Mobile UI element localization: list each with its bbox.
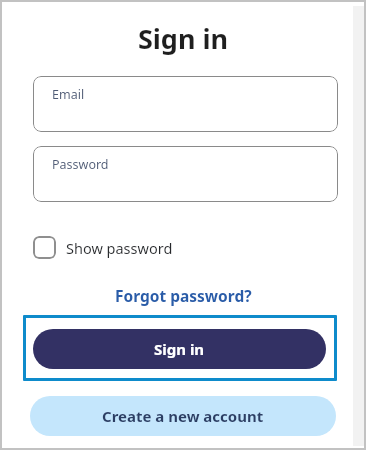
- button[interactable]: Sign in: [33, 329, 326, 369]
- staticText: Email: [52, 86, 85, 103]
- button[interactable]: Forgot password?: [115, 285, 252, 306]
- staticText: Sign in: [154, 339, 205, 359]
- button[interactable]: Create a new account: [30, 396, 336, 436]
- button[interactable]: Email: [33, 76, 338, 132]
- staticText: Forgot password?: [115, 285, 252, 306]
- staticText: Sign in: [0, 20, 366, 57]
- button[interactable]: Password: [33, 146, 338, 202]
- staticText: Show password: [66, 238, 173, 258]
- staticText: Create a new account: [102, 406, 264, 426]
- staticText: Password: [52, 156, 109, 173]
- button[interactable]: Show password: [33, 236, 173, 259]
